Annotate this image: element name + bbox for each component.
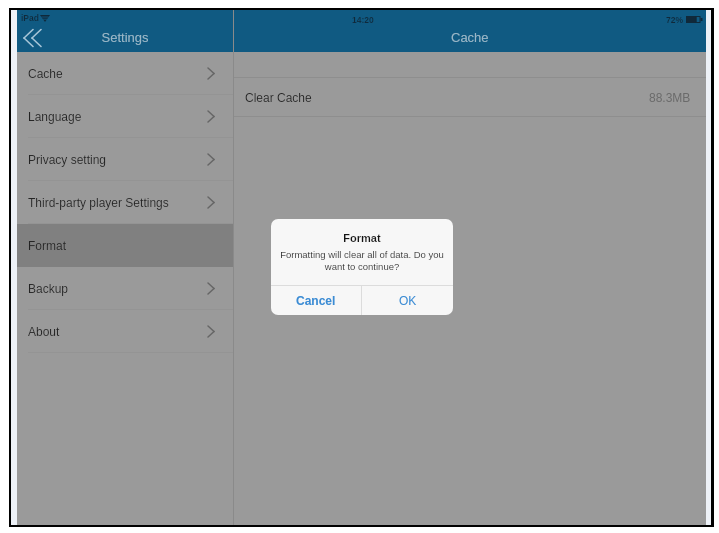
button[interactable]: Privacy setting — [17, 138, 233, 181]
staticText: Format — [343, 232, 381, 244]
button[interactable]: Cache — [17, 52, 233, 95]
button[interactable]: Back — [17, 23, 47, 52]
staticText: OK — [399, 294, 417, 307]
button[interactable]: About — [17, 310, 233, 353]
staticText: Backup — [28, 282, 69, 295]
button[interactable]: Third-party player Settings — [17, 181, 233, 224]
staticText: Cancel — [296, 294, 336, 307]
staticText: Formatting will clear all of data. Do yo… — [274, 249, 450, 272]
button[interactable]: Cancel — [271, 286, 361, 315]
button[interactable]: Clear Cache — [234, 78, 706, 116]
staticText: Language — [28, 110, 82, 123]
staticText: 88.3MB — [649, 91, 691, 104]
button[interactable]: OK — [362, 286, 453, 315]
button[interactable]: Format — [17, 224, 233, 267]
staticText: 14:20 — [352, 15, 374, 24]
staticText: Settings — [32, 30, 218, 45]
staticText: Third-party player Settings — [28, 196, 169, 209]
button[interactable]: Language — [17, 95, 233, 138]
staticText: 72% — [666, 15, 684, 24]
staticText: Clear Cache — [245, 91, 312, 104]
staticText: Cache — [28, 67, 63, 80]
staticText: Cache — [451, 30, 489, 45]
staticText: iPad — [21, 13, 39, 22]
staticText: About — [28, 325, 60, 338]
button[interactable]: Backup — [17, 267, 233, 310]
staticText: Privacy setting — [28, 153, 107, 166]
staticText: Format — [28, 239, 67, 252]
